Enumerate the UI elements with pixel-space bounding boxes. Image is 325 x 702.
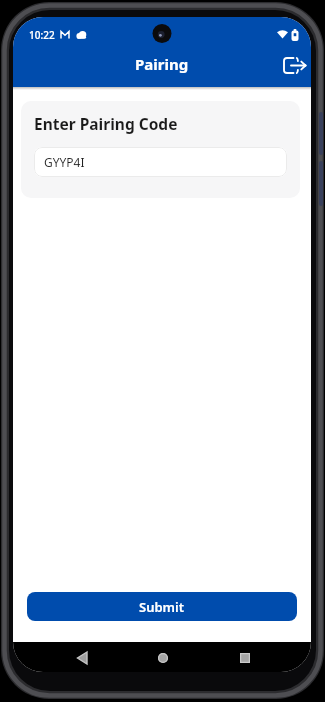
staticText: GYYP4I: [44, 154, 85, 170]
staticText: Enter Pairing Code: [34, 113, 178, 134]
staticText: 10:22: [29, 28, 55, 41]
staticText: Submit: [139, 598, 185, 616]
staticText: Pairing: [135, 54, 189, 74]
button[interactable]: [283, 56, 309, 76]
button[interactable]: [223, 646, 267, 670]
button[interactable]: GYYP4I: [34, 147, 287, 177]
button[interactable]: [141, 646, 185, 670]
button[interactable]: Submit: [27, 592, 297, 621]
button[interactable]: [60, 646, 104, 670]
